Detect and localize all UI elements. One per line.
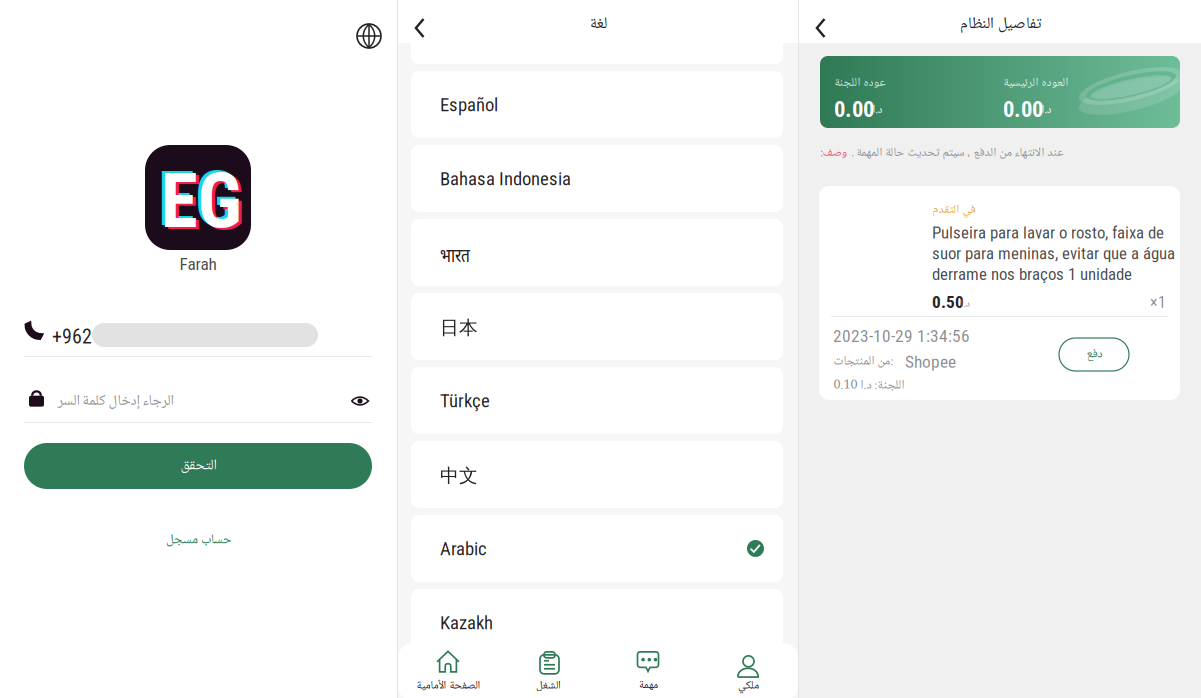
button[interactable]: Language: [351, 18, 387, 54]
staticText: suor para meninas, evitar que a água: [932, 244, 1175, 263]
button[interactable]: 中文: [411, 441, 783, 508]
button[interactable]: ملكي: [698, 647, 798, 698]
staticText: 2023-10-29 1:34:56: [833, 326, 970, 346]
staticText: ×1: [1150, 293, 1166, 312]
staticText: Pulseira para lavar o rosto, faixa de: [932, 223, 1164, 243]
staticText: :من المنتجات: [833, 351, 893, 373]
staticText: الصفحة الأمامية: [416, 676, 480, 696]
staticText: भारत: [440, 242, 470, 267]
button[interactable]: Arabic: [411, 515, 783, 582]
staticText: الشغل: [535, 676, 560, 696]
staticText: Arabic: [440, 538, 487, 560]
button[interactable]: التحقق: [24, 443, 372, 489]
staticText: Türkçe: [440, 390, 490, 412]
staticText: في التقدم: [932, 200, 975, 220]
button[interactable]: الصفحة الأمامية: [398, 647, 498, 698]
staticText: 0.00: [1003, 96, 1043, 123]
staticText: Kazakh: [440, 612, 493, 634]
staticText: Español: [440, 94, 498, 116]
button[interactable]: Back: [809, 12, 833, 44]
staticText: +962: [52, 325, 92, 348]
staticText: 中文: [440, 464, 478, 487]
staticText: 日本: [440, 316, 478, 339]
staticText: حساب مسجل: [165, 529, 230, 552]
staticText: د.ا: [960, 295, 969, 313]
staticText: Farah: [179, 254, 216, 274]
staticText: Shopee: [905, 352, 956, 372]
staticText: التحقق: [180, 453, 216, 478]
staticText: 0.00: [834, 96, 874, 123]
button[interactable]: حساب مسجل: [138, 529, 258, 549]
staticText: د.ا: [872, 100, 882, 120]
button[interactable]: 日本: [411, 293, 783, 360]
staticText: دفع: [1086, 344, 1102, 365]
staticText: derrame nos braços 1 unidade: [932, 264, 1132, 284]
staticText: العوده الرئيسية: [1003, 73, 1068, 93]
staticText: لغة: [589, 11, 606, 38]
staticText: Bahasa Indonesia: [440, 168, 571, 190]
button[interactable]: الشغل: [498, 647, 598, 698]
staticText: مهمة: [638, 676, 657, 695]
staticText: عند الانتهاء من الدفع ، سيتم تحديث حالة …: [851, 143, 1063, 163]
button[interactable]: Back: [408, 12, 432, 44]
button[interactable]: دفع: [1059, 338, 1129, 371]
button[interactable]: Español: [411, 71, 783, 138]
button[interactable]: [411, 0, 783, 64]
staticText: وصف:: [820, 143, 847, 163]
button[interactable]: Türkçe: [411, 367, 783, 434]
staticText: 0.50: [932, 292, 964, 312]
staticText: اللجنة: د.ا 0.10: [833, 375, 904, 397]
button[interactable]: Show password: [349, 392, 371, 410]
button[interactable]: مهمة: [598, 647, 698, 698]
staticText: الرجاء إدخال كلمة السر: [57, 389, 173, 414]
staticText: تفاصيل النظام: [959, 11, 1040, 38]
staticText: ملكي: [737, 676, 758, 696]
button[interactable]: Bahasa Indonesia: [411, 145, 783, 212]
staticText: EG: [157, 154, 238, 244]
button[interactable]: भारत: [411, 219, 783, 286]
staticText: EG: [163, 158, 244, 248]
staticText: عوده اللجنة: [834, 73, 885, 93]
staticText: د.ا: [1041, 100, 1051, 120]
staticText: EG: [160, 156, 241, 246]
button[interactable]: Kazakh: [411, 589, 783, 656]
